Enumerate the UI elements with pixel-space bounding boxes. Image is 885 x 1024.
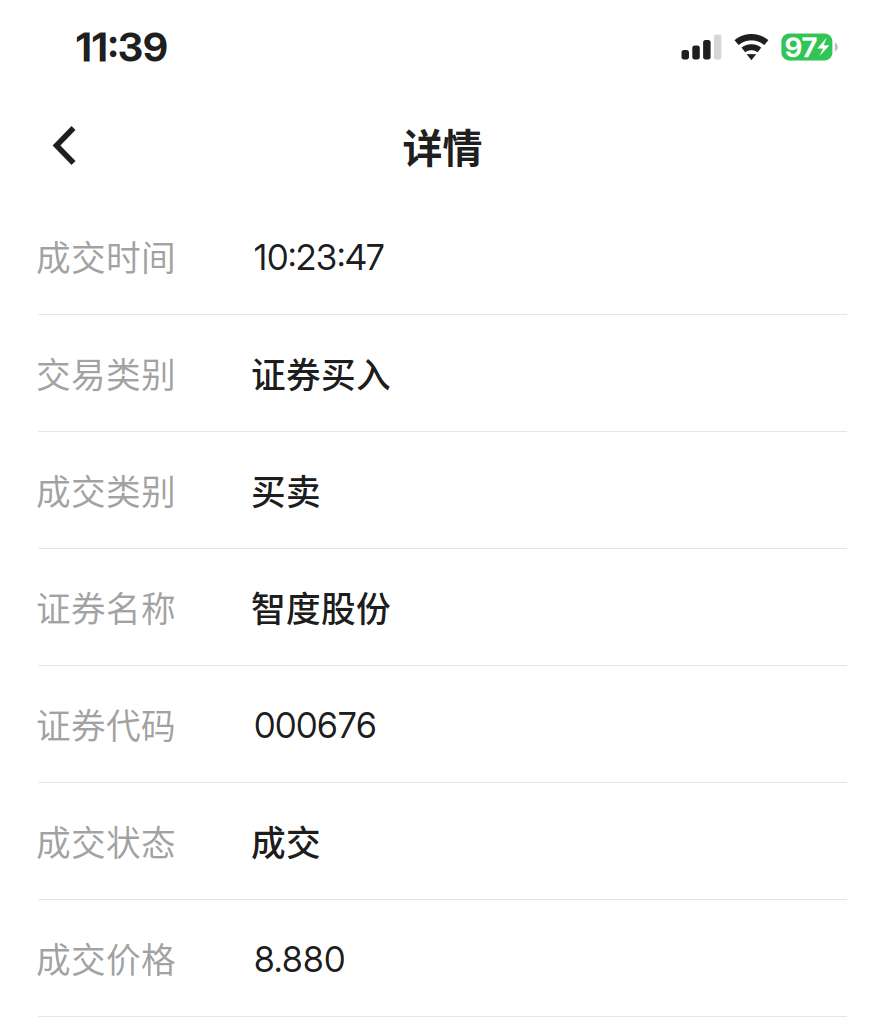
button[interactable]: 成交类别	[0, 432, 885, 549]
staticText: 10:23:47	[254, 236, 384, 278]
staticText: 交易类别	[36, 348, 176, 398]
staticText: 成交	[251, 816, 321, 866]
button[interactable]: 成交状态	[0, 783, 885, 900]
staticText: 买卖	[251, 465, 321, 515]
button[interactable]: Back	[33, 113, 97, 177]
button[interactable]: 成交时间	[0, 198, 885, 315]
button[interactable]: 证券名称	[0, 549, 885, 666]
button[interactable]: 成交价格	[0, 900, 885, 1017]
staticText: 8.880	[254, 938, 345, 980]
staticText: 成交价格	[36, 933, 176, 983]
button[interactable]: 交易类别	[0, 315, 885, 432]
staticText: 成交类别	[36, 465, 176, 515]
staticText: 成交时间	[36, 231, 176, 281]
staticText: 证券代码	[36, 699, 176, 749]
button[interactable]: 证券代码	[0, 666, 885, 783]
staticText: 证券买入	[251, 348, 391, 398]
staticText: 11:39	[76, 23, 168, 71]
staticText: 成交状态	[36, 816, 176, 866]
staticText: 智度股份	[251, 582, 391, 632]
staticText: 详情	[402, 116, 482, 174]
staticText: 000676	[254, 704, 377, 746]
staticText: 证券名称	[36, 582, 176, 632]
staticText: 97	[784, 30, 817, 64]
